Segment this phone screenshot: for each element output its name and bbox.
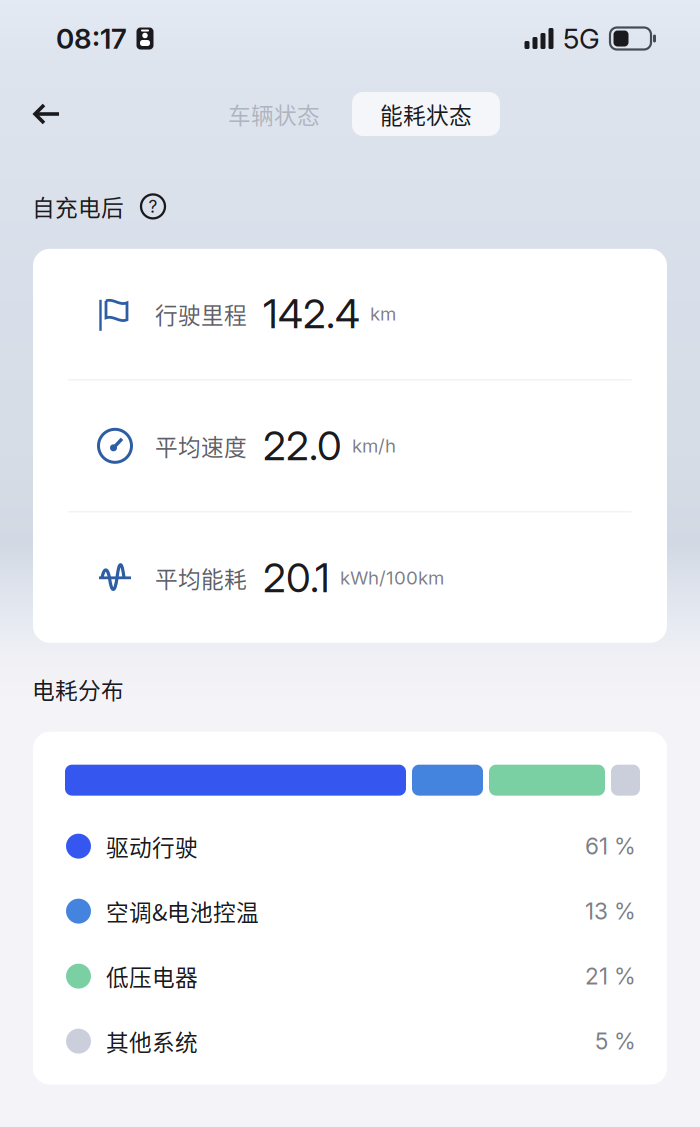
staticText: 20.1 xyxy=(263,554,330,602)
staticText: 行驶里程 xyxy=(155,297,247,330)
staticText: 其他系统 xyxy=(106,1025,198,1057)
staticText: 5G xyxy=(563,22,600,55)
staticText: 车辆状态 xyxy=(228,98,320,130)
staticText: 142.4 xyxy=(263,290,360,338)
button[interactable]: 车辆状态 xyxy=(200,92,348,136)
staticText: km xyxy=(370,302,396,325)
staticText: 电耗分布 xyxy=(32,673,124,706)
staticText: 13 % xyxy=(585,897,636,925)
button[interactable]: Help xyxy=(124,193,166,219)
staticText: 08:17 xyxy=(56,22,127,55)
staticText: 能耗状态 xyxy=(380,98,472,130)
staticText: kWh/100km xyxy=(340,566,444,589)
staticText: 22.0 xyxy=(263,422,342,470)
staticText: 平均能耗 xyxy=(155,561,247,594)
button[interactable]: 能耗状态 xyxy=(352,92,500,136)
staticText: 低压电器 xyxy=(106,960,198,992)
staticText: 平均速度 xyxy=(155,429,247,462)
staticText: 空调&电池控温 xyxy=(106,895,259,927)
button[interactable]: Back xyxy=(20,90,72,138)
staticText: 21 % xyxy=(585,962,636,990)
staticText: 驱动行驶 xyxy=(106,830,198,862)
staticText: 61 % xyxy=(585,832,636,860)
staticText: 5 % xyxy=(595,1027,636,1055)
staticText: ? xyxy=(148,196,157,217)
staticText: km/h xyxy=(352,434,396,457)
staticText: 自充电后 xyxy=(32,190,124,223)
